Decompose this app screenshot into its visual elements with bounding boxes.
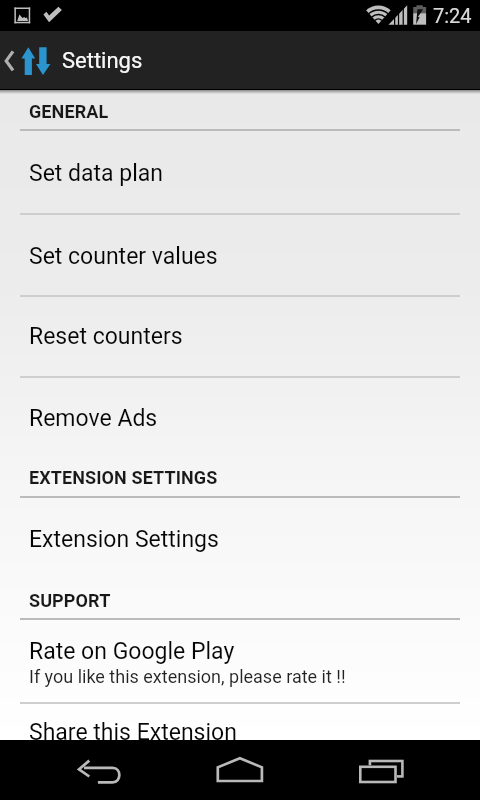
staticText: 7:24 xyxy=(433,4,472,27)
staticText: If you like this extension, please rate … xyxy=(29,666,346,687)
button[interactable]: Set data plan xyxy=(0,131,480,213)
button[interactable]: Rate on Google Play xyxy=(0,620,480,702)
button[interactable]: Home xyxy=(160,740,320,800)
button[interactable]: Extension Settings xyxy=(0,498,480,560)
staticText: SUPPORT xyxy=(29,590,111,611)
button[interactable]: Recent apps xyxy=(320,740,480,800)
button[interactable]: Back xyxy=(0,740,160,800)
staticText: GENERAL xyxy=(29,101,109,122)
staticText: Share this Extension xyxy=(29,719,237,740)
button[interactable]: Share this Extension xyxy=(0,704,480,740)
staticText: Set counter values xyxy=(29,243,218,270)
staticText: Extension Settings xyxy=(29,526,219,553)
staticText: Remove Ads xyxy=(29,405,158,432)
staticText: Rate on Google Play xyxy=(29,638,235,665)
button[interactable]: Set counter values xyxy=(0,215,480,295)
button[interactable]: Remove Ads xyxy=(0,378,480,440)
button[interactable]: Reset counters xyxy=(0,297,480,376)
staticText: Settings xyxy=(62,48,143,74)
button[interactable]: Navigate up xyxy=(0,31,480,90)
staticText: Set data plan xyxy=(29,160,164,187)
staticText: Reset counters xyxy=(29,323,183,350)
staticText: EXTENSION SETTINGS xyxy=(29,467,218,488)
